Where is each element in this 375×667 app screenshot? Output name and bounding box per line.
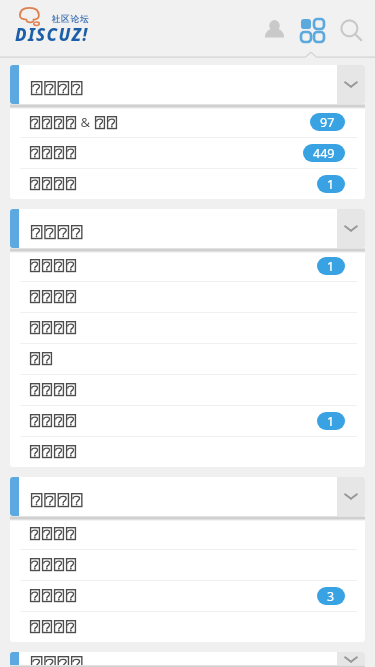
staticText: 3 [327,588,335,605]
button[interactable] [10,518,365,549]
staticText: DISCUZ! [15,23,89,46]
button[interactable]: Profile [258,14,290,46]
button[interactable] [10,374,365,405]
button[interactable]: 1 [10,168,365,199]
staticText: 97 [320,114,335,131]
staticText: 1 [327,413,335,430]
button[interactable] [10,477,365,516]
button[interactable] [10,209,365,248]
button[interactable]: 1 [10,250,365,281]
staticText: 1 [327,258,335,275]
staticText: 449 [313,145,335,162]
button[interactable]: Forums [296,14,328,46]
staticText: & [77,113,94,131]
button[interactable] [10,549,365,580]
button[interactable] [10,436,365,467]
button[interactable]: & [10,106,365,137]
button[interactable] [10,312,365,343]
button[interactable]: 1 [10,405,365,436]
button[interactable] [10,652,365,667]
button[interactable]: 3 [10,580,365,611]
staticText: 社区论坛 [51,14,89,25]
button[interactable]: Search [335,14,367,46]
staticText: 1 [327,176,335,193]
button[interactable] [10,343,365,374]
button[interactable]: 449 [10,137,365,168]
button[interactable] [10,281,365,312]
button[interactable] [10,611,365,642]
button[interactable] [10,65,365,104]
